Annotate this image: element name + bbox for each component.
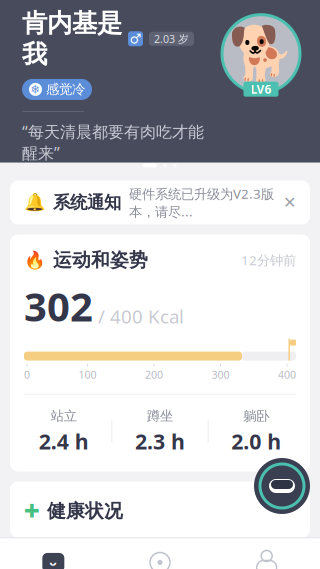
button[interactable]: Discover <box>107 538 213 569</box>
button[interactable]: Profile <box>213 538 320 569</box>
staticText: 0 <box>24 368 30 382</box>
staticText: LV6 <box>250 81 271 97</box>
staticText: 蹲坐 <box>147 408 173 424</box>
staticText: ❄ <box>30 83 40 96</box>
staticText: 2.4 h <box>39 427 89 455</box>
staticText: ᵕ <box>49 552 57 569</box>
staticText: ✚ <box>24 500 40 521</box>
staticText: 2.0 h <box>231 427 281 455</box>
staticText: 302 <box>24 279 93 333</box>
button[interactable]: ❄ <box>22 79 92 100</box>
staticText: ✕ <box>283 193 296 212</box>
staticText: 100 <box>78 368 96 382</box>
button[interactable]: Pet <box>0 538 107 569</box>
staticText: 300 <box>211 368 229 382</box>
staticText: 12分钟前 <box>241 251 296 269</box>
staticText: 躺卧 <box>243 408 269 424</box>
staticText: / 400 Kcal <box>93 304 184 329</box>
staticText: 200 <box>145 368 163 382</box>
staticText: 硬件系统已升级为V2.3版本，请尽... <box>129 185 274 220</box>
button[interactable]: 🔔 <box>10 180 310 224</box>
staticText: 肯内基是我 <box>22 8 122 70</box>
staticText: 🔔 <box>24 193 46 212</box>
staticText: 2.3 h <box>135 427 185 455</box>
staticText: 🐕 <box>228 23 294 84</box>
staticText: 感觉冷 <box>46 81 85 98</box>
staticText: 运动和姿势 <box>53 248 148 271</box>
staticText: 健康状况 <box>47 499 123 522</box>
staticText: 🔥 <box>24 250 46 270</box>
staticText: 400 <box>278 368 296 382</box>
button[interactable]: Device <box>254 458 310 514</box>
staticText: “每天清晨都要有肉吃才能醒来” <box>22 121 204 163</box>
staticText: 站立 <box>51 408 77 424</box>
staticText: ♂ <box>129 31 141 46</box>
staticText: 系统通知 <box>53 192 121 213</box>
staticText: 2.03 岁 <box>154 32 189 46</box>
